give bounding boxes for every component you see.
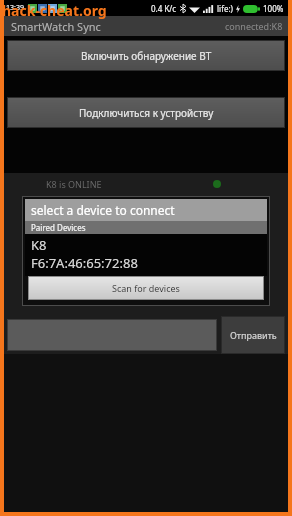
button[interactable]: Отправить — [221, 316, 285, 354]
button[interactable] — [7, 319, 217, 351]
staticText: Paired Devices — [31, 222, 86, 233]
button[interactable]: Подключиться к устройству — [7, 97, 285, 128]
staticText: connected:K8 — [225, 20, 283, 32]
staticText: Scan for devices — [112, 282, 180, 294]
staticText: F6:7A:46:65:72:88 — [31, 254, 138, 272]
button[interactable]: Scan for devices — [28, 276, 264, 300]
staticText: 0.4 K/c — [151, 3, 177, 14]
staticText: 100% — [263, 3, 284, 14]
staticText: Включить обнаружение ВТ — [81, 49, 212, 63]
staticText: Отправить — [230, 329, 277, 341]
staticText: 13:39 — [6, 3, 24, 13]
staticText: life:) — [217, 3, 233, 14]
staticText: SmartWatch Sync — [11, 19, 101, 34]
staticText: select a device to connect — [31, 202, 175, 218]
staticText: K8 — [31, 236, 47, 254]
staticText: Подключиться к устройству — [79, 106, 214, 120]
button[interactable]: K8 — [25, 234, 267, 276]
button[interactable]: Включить обнаружение ВТ — [7, 40, 285, 71]
staticText: hack-cheat.org — [2, 1, 107, 20]
staticText: K8 is ONLINE — [46, 178, 102, 190]
